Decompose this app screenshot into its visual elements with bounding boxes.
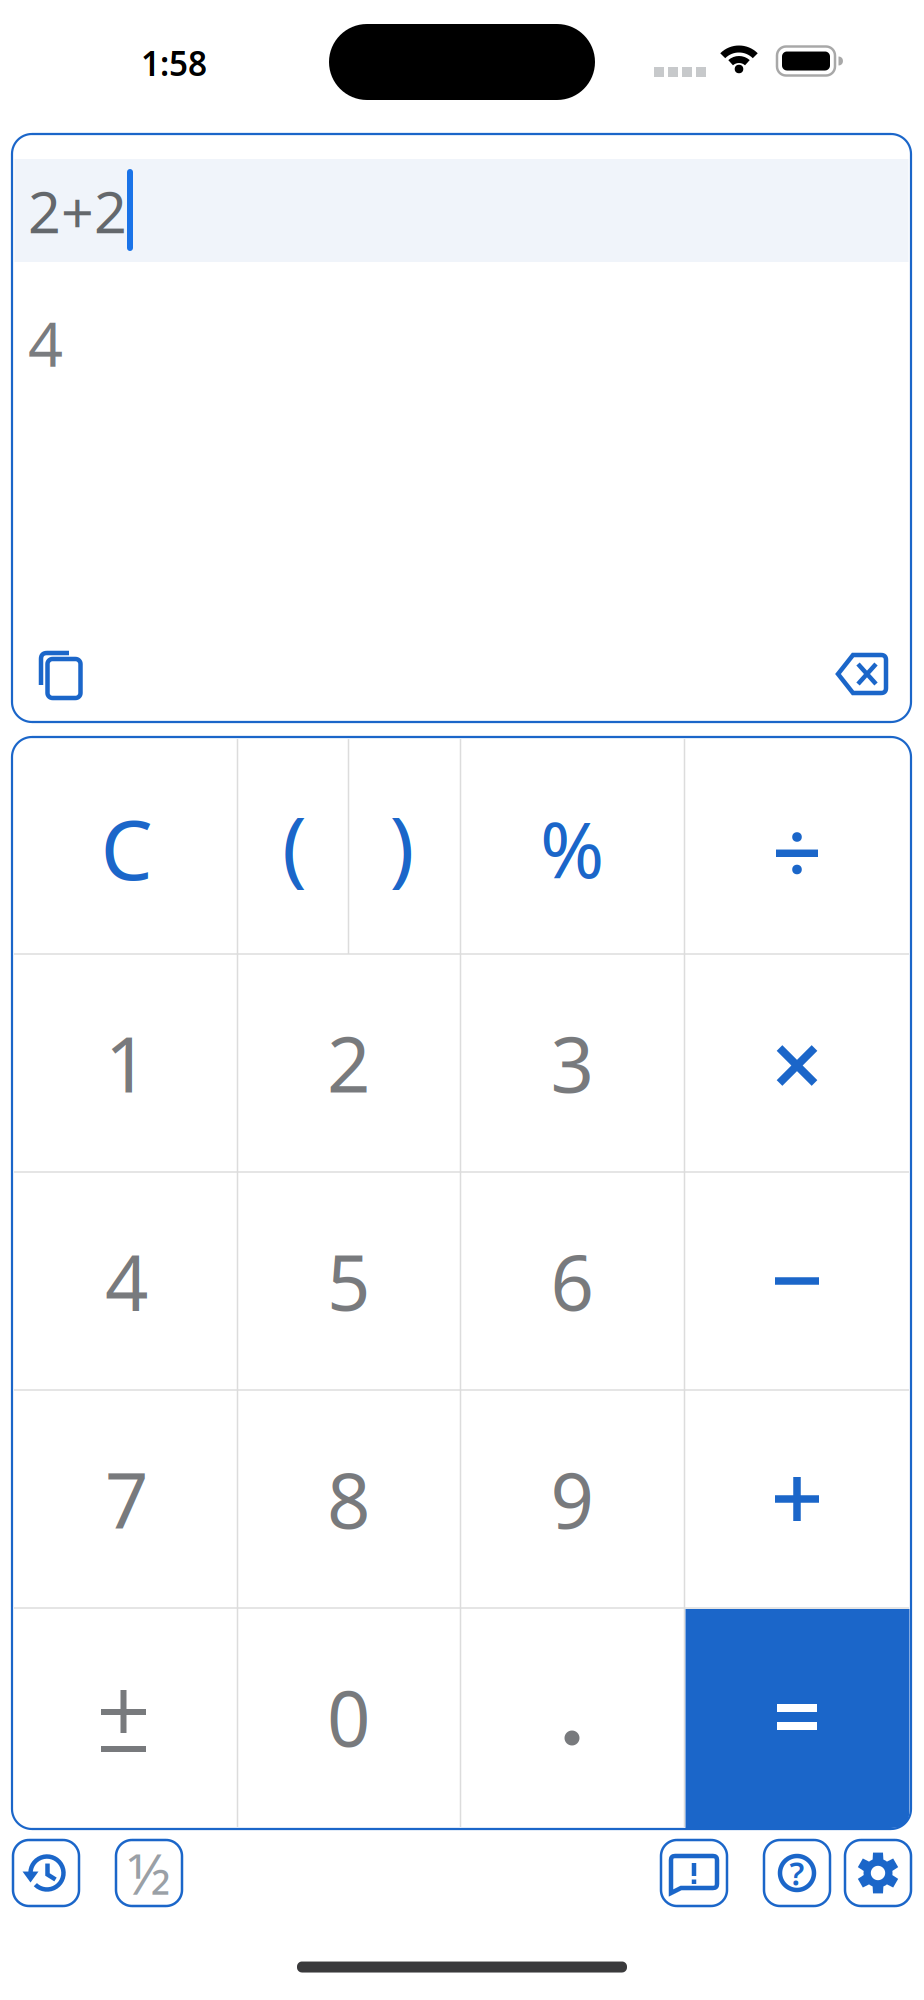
staticText: 7 (105, 1448, 148, 1549)
staticText: ( (282, 790, 307, 900)
staticText: 1:58 (141, 41, 207, 85)
staticText: ? (789, 1852, 804, 1894)
staticText: 9 (550, 1448, 593, 1549)
staticText: % (540, 797, 604, 899)
staticText: 4 (28, 302, 63, 384)
staticText: 3 (550, 1012, 593, 1113)
staticText: 4 (105, 1230, 148, 1331)
staticText: C (100, 793, 152, 903)
staticText: 2 (327, 1012, 370, 1113)
staticText: ) (389, 790, 414, 900)
staticText: 6 (550, 1230, 593, 1331)
staticText: 8 (327, 1448, 370, 1549)
staticText: 0 (327, 1666, 370, 1767)
staticText: ½ (127, 1836, 170, 1910)
staticText: 5 (327, 1230, 370, 1331)
staticText: 1 (105, 1012, 148, 1113)
staticText: 2+2 (28, 173, 127, 249)
